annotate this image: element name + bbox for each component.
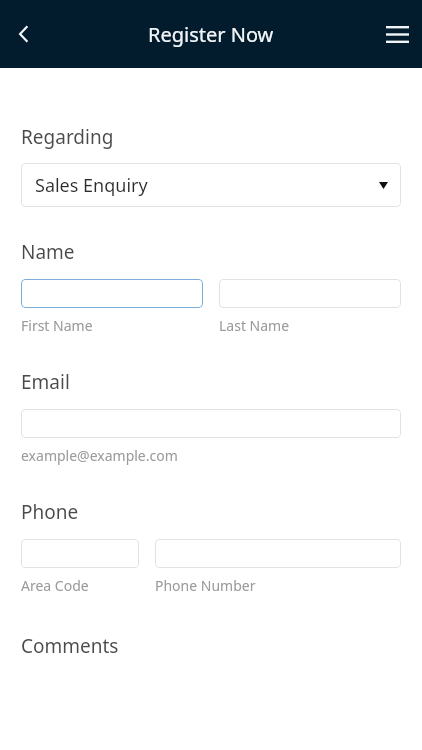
button[interactable]: Back bbox=[6, 16, 42, 52]
button[interactable] bbox=[21, 539, 139, 568]
staticText: Area Code bbox=[21, 576, 155, 595]
staticText: First Name bbox=[21, 316, 219, 335]
staticText: Register Now bbox=[148, 21, 274, 48]
button[interactable] bbox=[155, 539, 401, 568]
staticText: Regarding bbox=[21, 124, 114, 150]
staticText: Sales Enquiry bbox=[35, 173, 148, 198]
button[interactable] bbox=[21, 279, 203, 308]
staticText: Comments bbox=[21, 633, 119, 659]
button[interactable] bbox=[21, 409, 401, 438]
staticText: Last Name bbox=[219, 316, 290, 335]
staticText: Phone bbox=[21, 499, 79, 525]
button[interactable]: Sales Enquiry bbox=[21, 163, 401, 207]
button[interactable] bbox=[219, 279, 401, 308]
staticText: example@example.com bbox=[21, 446, 178, 465]
button[interactable]: Menu bbox=[378, 15, 416, 53]
staticText: Name bbox=[21, 239, 75, 265]
staticText: Phone Number bbox=[155, 576, 256, 595]
staticText: Email bbox=[21, 369, 70, 395]
